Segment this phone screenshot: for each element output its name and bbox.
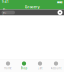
button[interactable]: Account xyxy=(48,59,64,72)
staticText: Shop xyxy=(20,66,27,70)
staticText: Cart xyxy=(37,66,42,70)
button[interactable]: Shop xyxy=(16,59,32,72)
staticText: ◼◼▮ xyxy=(57,0,62,3)
button[interactable]: Home xyxy=(0,59,16,72)
button[interactable]: Cart xyxy=(32,59,48,72)
staticText: Grocery xyxy=(24,4,39,9)
button[interactable]: Search xyxy=(1,11,15,14)
staticText: Search xyxy=(2,7,6,18)
staticText: 9:41 xyxy=(2,0,9,4)
staticText: Home xyxy=(4,66,12,70)
button[interactable]: Profile xyxy=(57,10,62,15)
staticText: Account xyxy=(50,66,61,70)
